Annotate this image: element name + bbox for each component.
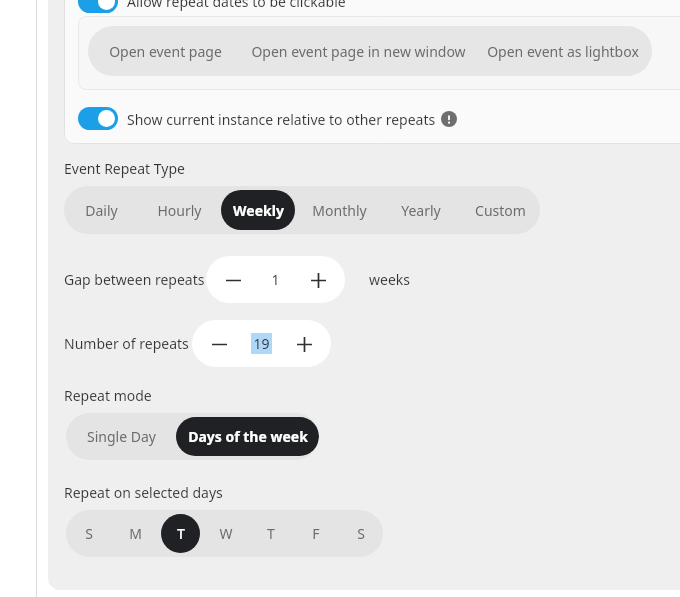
staticText: Gap between repeats	[64, 270, 205, 289]
staticText: T	[267, 524, 275, 543]
staticText: Single Day	[87, 427, 156, 446]
staticText: Open event page	[109, 42, 222, 61]
button[interactable]: Increase	[289, 329, 319, 359]
button[interactable]: M	[112, 510, 158, 557]
staticText: Number of repeats	[64, 334, 189, 353]
staticText: M	[129, 524, 142, 543]
button[interactable]: Open event page	[88, 26, 242, 76]
staticText: weeks	[369, 270, 410, 289]
button[interactable]: S	[66, 510, 112, 557]
staticText: Days of the week	[188, 427, 308, 446]
staticText: W	[219, 524, 233, 543]
button[interactable]: Single Day	[66, 413, 176, 460]
staticText: T	[177, 524, 185, 543]
staticText: Allow repeat dates to be clickable	[127, 0, 346, 11]
staticText: Open event page in new window	[251, 42, 466, 61]
staticText: Monthly	[312, 201, 367, 220]
staticText: Repeat mode	[64, 386, 152, 405]
button[interactable]: Weekly	[219, 186, 297, 234]
staticText: 1	[271, 270, 280, 289]
button[interactable]: Toggle	[78, 0, 118, 13]
button[interactable]: Increase	[303, 265, 333, 295]
button[interactable]: More information	[441, 111, 457, 127]
staticText: Show current instance relative to other …	[127, 110, 436, 129]
staticText: Repeat on selected days	[64, 483, 223, 502]
staticText: Custom	[475, 201, 526, 220]
staticText: F	[312, 524, 320, 543]
button[interactable]: T	[248, 510, 293, 557]
button[interactable]: Open event as lightbox	[474, 26, 652, 76]
button[interactable]: F	[293, 510, 338, 557]
button[interactable]: Decrease	[218, 265, 248, 295]
staticText: 19	[253, 334, 270, 353]
button[interactable]: Toggle	[78, 107, 118, 130]
staticText: S	[357, 524, 365, 543]
button[interactable]: Monthly	[297, 186, 382, 234]
staticText: Daily	[85, 201, 118, 220]
staticText: Event Repeat Type	[64, 159, 185, 178]
button[interactable]: Custom	[460, 186, 540, 234]
button[interactable]: Daily	[64, 186, 139, 234]
staticText: S	[85, 524, 93, 543]
staticText: Yearly	[401, 201, 441, 220]
button[interactable]: W	[203, 510, 248, 557]
button[interactable]: S	[338, 510, 383, 557]
button[interactable]: Decrease	[204, 329, 234, 359]
button[interactable]: Hourly	[139, 186, 219, 234]
staticText: Hourly	[157, 201, 202, 220]
button[interactable]: Days of the week	[176, 413, 319, 460]
button[interactable]: T	[158, 510, 203, 557]
button[interactable]: Yearly	[382, 186, 460, 234]
staticText: Open event as lightbox	[487, 42, 639, 61]
staticText: Weekly	[233, 201, 284, 220]
button[interactable]: Open event page in new window	[242, 26, 474, 76]
